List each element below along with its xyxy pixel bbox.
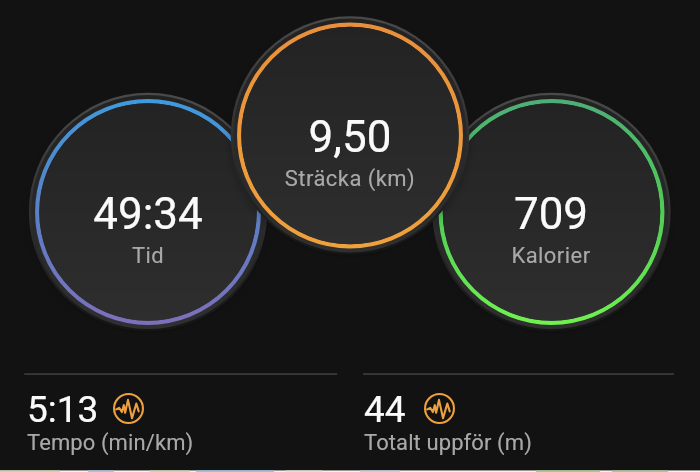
button[interactable]: 709 [441,102,661,322]
staticText: 5:13 [27,388,99,431]
button[interactable]: 5:13 [24,382,337,462]
button[interactable]: 44 [361,382,674,462]
staticText: 709 [441,188,661,240]
staticText: Sträcka (km) [240,166,460,192]
button[interactable]: 9,50 [240,25,460,245]
staticText: 44 [364,388,406,431]
staticText: 49:34 [38,188,258,240]
other: Activity details [424,393,455,424]
staticText: Tempo (min/km) [27,430,194,456]
button[interactable]: 49:34 [38,102,258,322]
staticText: Tid [38,243,258,269]
staticText: Kalorier [441,243,661,269]
staticText: Totalt uppför (m) [364,430,532,456]
staticText: 9,50 [240,111,460,163]
other: Activity details [113,393,144,424]
